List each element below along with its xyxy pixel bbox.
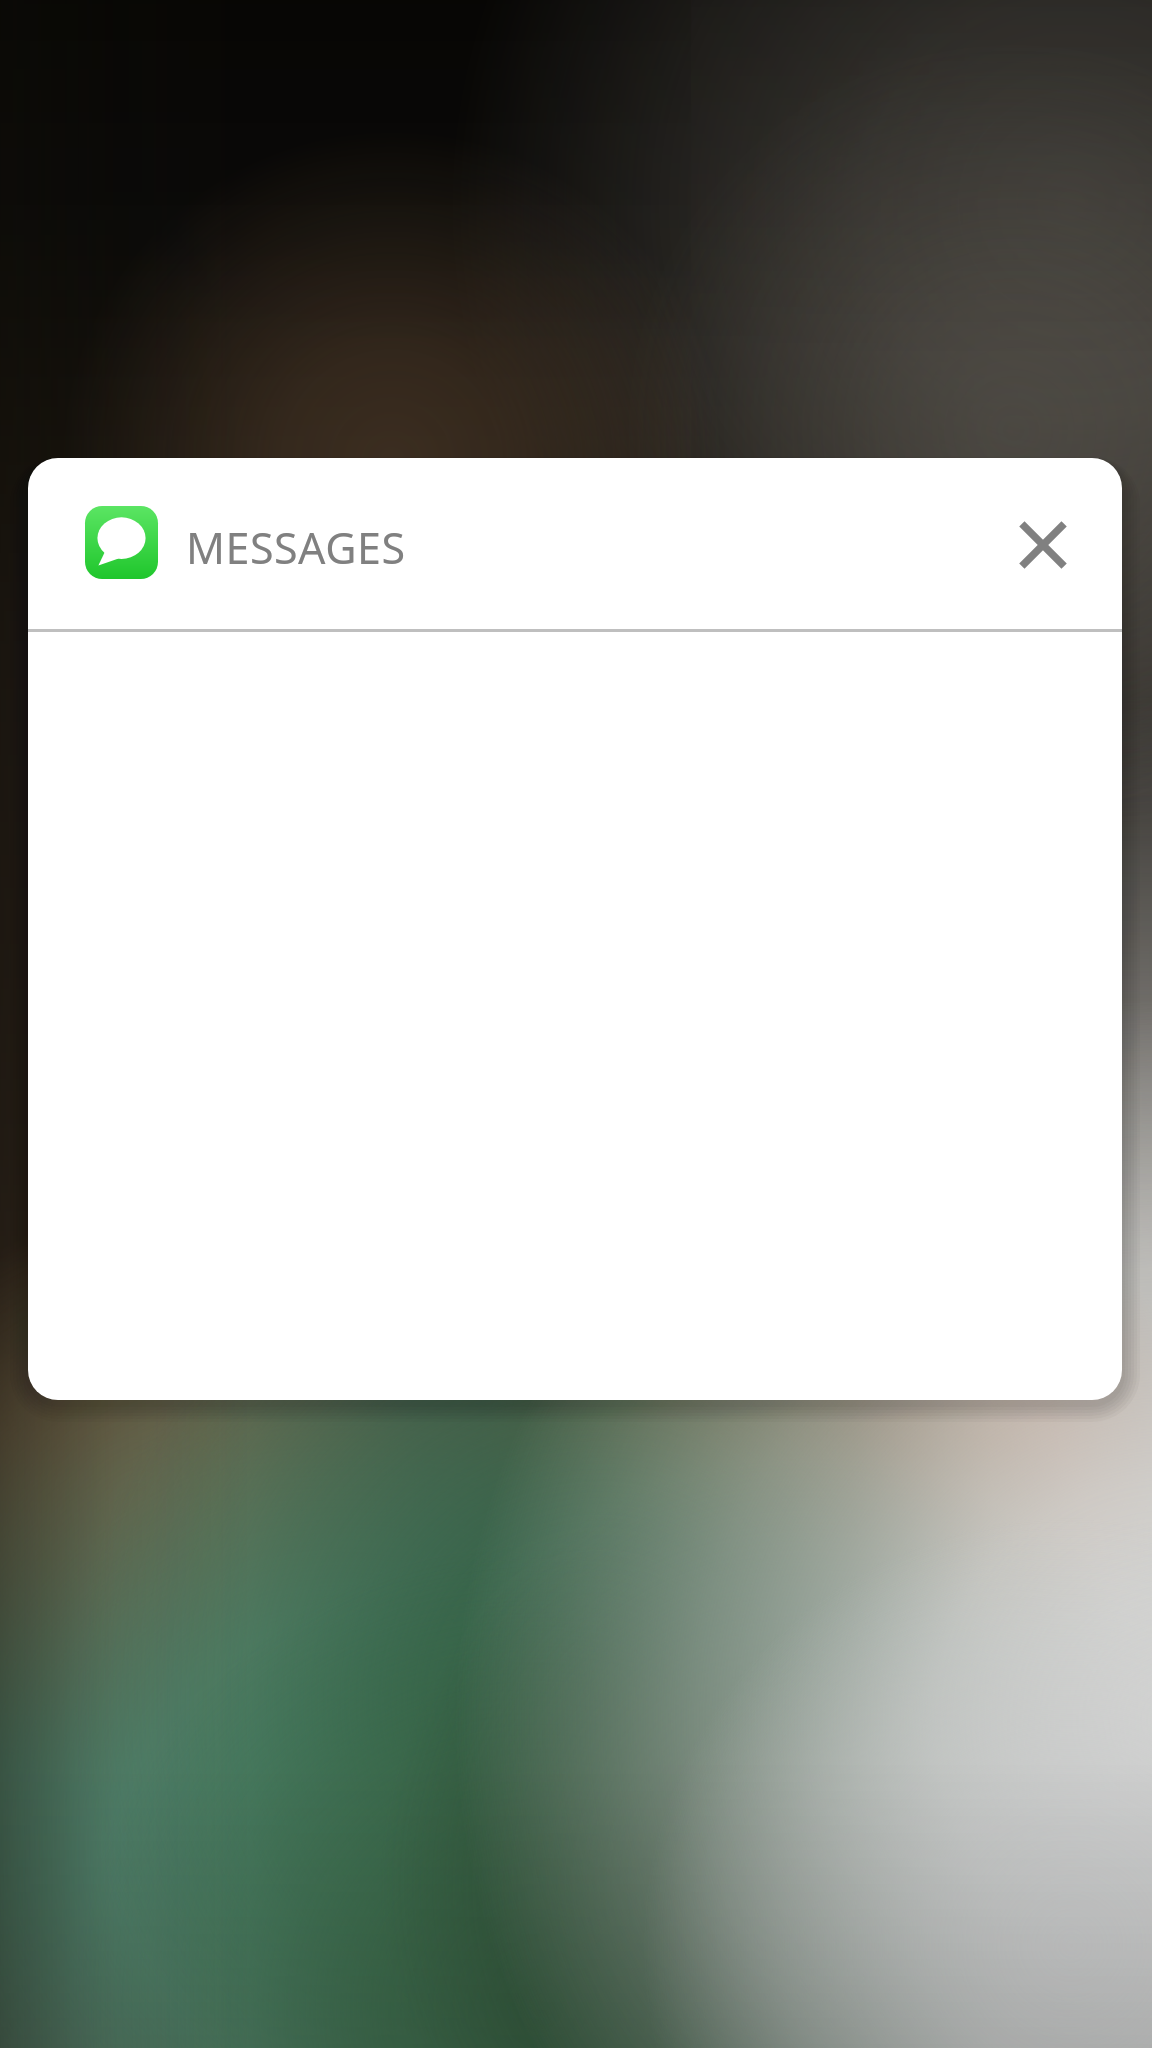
button[interactable]: Close — [988, 490, 1098, 600]
staticText: MESSAGES — [186, 518, 406, 577]
button[interactable]: MESSAGES — [186, 518, 406, 577]
button[interactable] — [28, 634, 1122, 1400]
other: Messages app icon — [85, 506, 158, 579]
